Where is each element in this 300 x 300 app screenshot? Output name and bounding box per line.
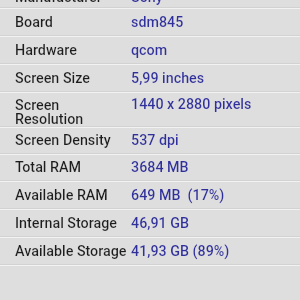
staticText: 1440 x 2880 pixels: [131, 96, 252, 113]
staticText: 46,91 GB: [131, 215, 189, 232]
button[interactable]: Screen Density: [0, 126, 300, 153]
staticText: 41,93 GB (89%): [131, 243, 230, 260]
staticText: Internal Storage: [15, 215, 118, 232]
staticText: sdm845: [131, 14, 184, 31]
staticText: 5,99 inches: [131, 70, 205, 87]
button[interactable]: Total RAM: [0, 153, 300, 180]
button[interactable]: Available Storage: [0, 236, 300, 264]
staticText: Screen Resolution: [15, 97, 84, 126]
staticText: Screen Size: [15, 70, 90, 87]
staticText: Board: [15, 14, 53, 31]
staticText: 3684 MB: [131, 159, 189, 176]
staticText: Manufacturer: [15, 0, 102, 6]
button[interactable]: Screen Size: [0, 63, 300, 91]
staticText: Screen Density: [15, 132, 111, 149]
button[interactable]: Manufacturer: [0, 0, 300, 7]
button[interactable]: Screen Resolution: [0, 91, 300, 126]
button[interactable]: Hardware: [0, 35, 300, 63]
staticText: Total RAM: [15, 159, 82, 176]
staticText: Available Storage: [15, 243, 127, 260]
staticText: qcom: [131, 42, 168, 59]
staticText: Available RAM: [15, 187, 108, 204]
button[interactable]: Available RAM: [0, 180, 300, 208]
staticText: 649 MB (17%): [131, 187, 225, 204]
button[interactable]: [0, 264, 300, 280]
staticText: Sony: [131, 0, 163, 6]
button[interactable]: Board: [0, 7, 300, 35]
button[interactable]: Internal Storage: [0, 208, 300, 236]
staticText: 537 dpi: [131, 132, 179, 149]
staticText: Hardware: [15, 42, 77, 59]
